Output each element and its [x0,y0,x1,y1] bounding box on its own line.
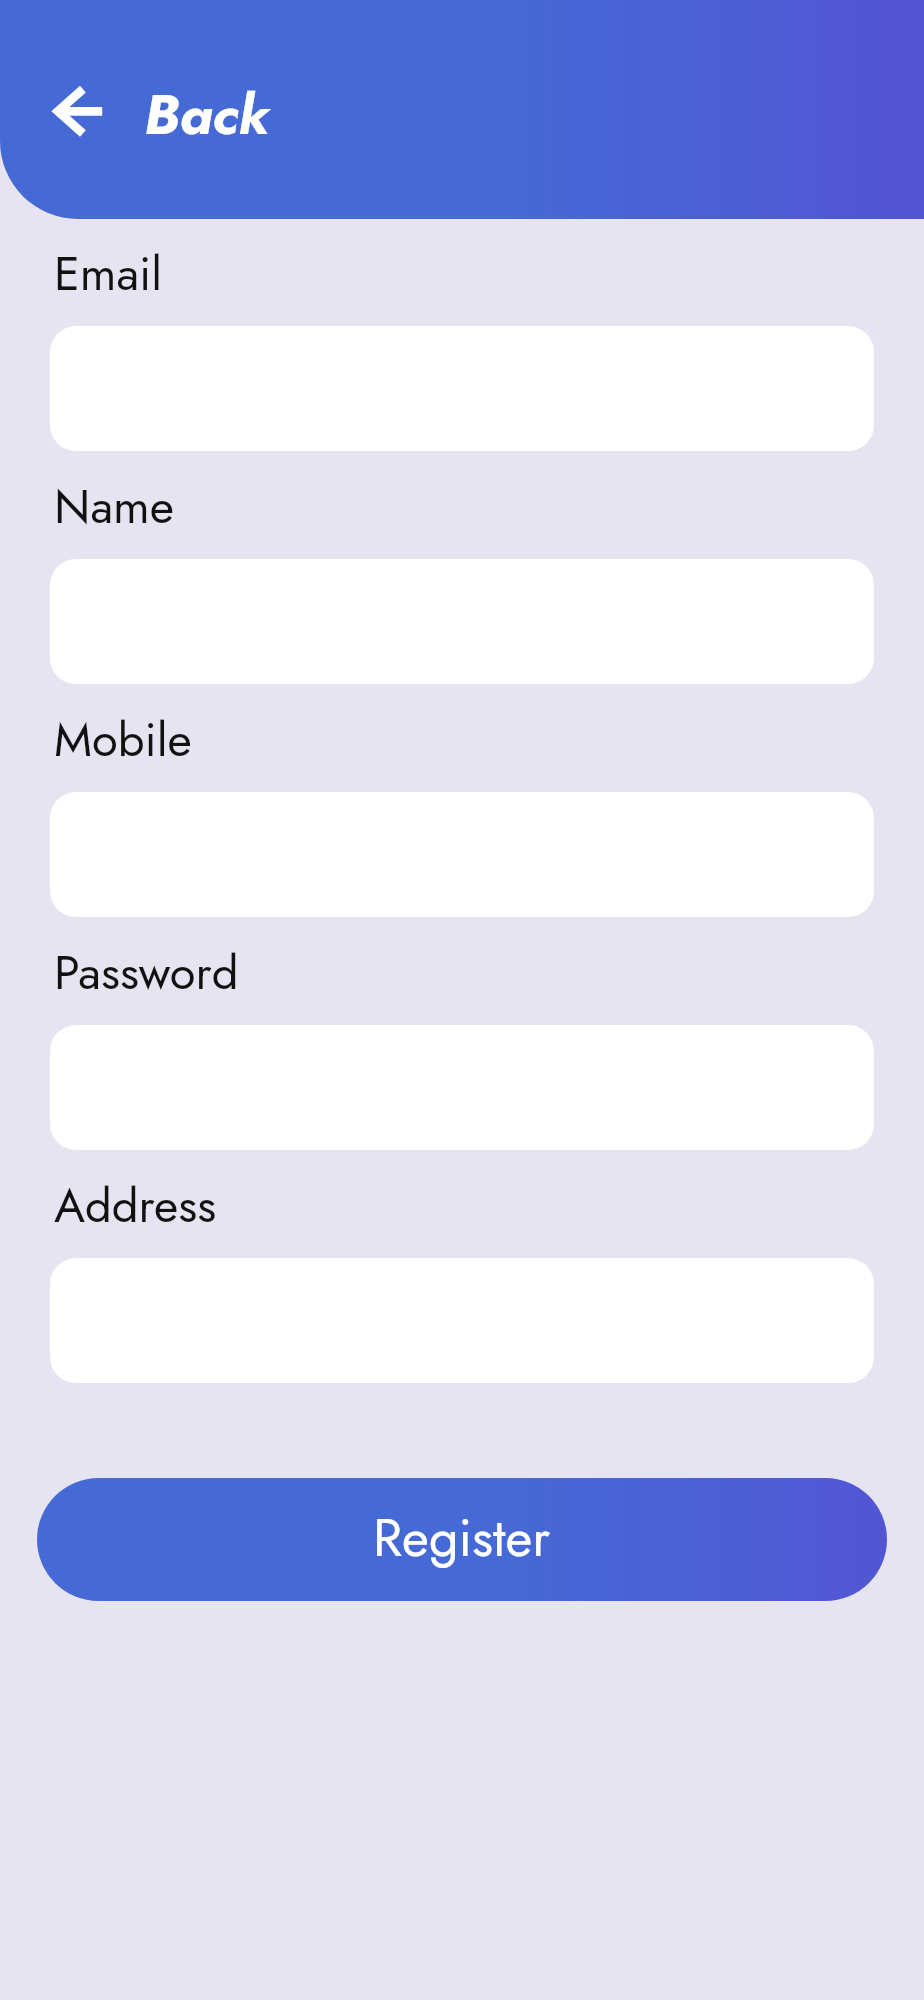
staticText: Mobile [54,706,192,774]
button[interactable]: Back [40,66,270,162]
staticText: Email [54,240,163,308]
staticText: Back [144,75,270,154]
button[interactable]: Register [37,1478,887,1601]
staticText: Register [373,1500,551,1575]
staticText: Address [54,1172,217,1240]
staticText: Password [54,939,239,1007]
staticText: Name [54,473,174,541]
other: Back [40,66,112,162]
